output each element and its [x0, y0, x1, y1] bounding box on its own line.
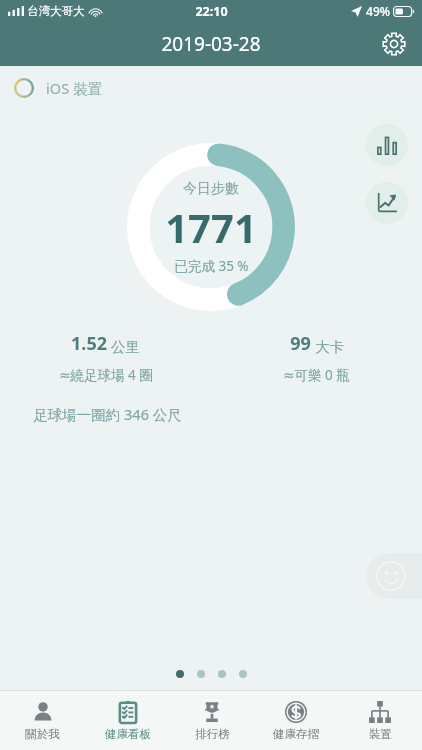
staticText: 已完成 35 %: [174, 257, 249, 275]
staticText: ≈繞足球場 4 圈: [59, 366, 153, 384]
staticText: 關於我: [25, 727, 60, 741]
staticText: 排行榜: [195, 727, 230, 741]
button[interactable]: 關於我: [0, 691, 85, 750]
button[interactable]: Feedback: [366, 553, 422, 599]
button[interactable]: 排行榜: [170, 691, 254, 750]
staticText: 足球場一圈約 346 公尺: [33, 404, 182, 424]
button[interactable]: Statistics chart: [366, 124, 408, 166]
staticText: 台湾大哥大: [27, 4, 85, 18]
staticText: 49%: [366, 3, 390, 19]
staticText: 22:10: [195, 3, 228, 20]
button[interactable]: Settings: [374, 24, 414, 64]
staticText: 健康看板: [105, 727, 151, 741]
staticText: 健康存摺: [273, 727, 319, 741]
staticText: 大卡: [315, 338, 344, 356]
button[interactable]: 健康存摺: [254, 691, 338, 750]
staticText: iOS 裝置: [46, 78, 102, 98]
staticText: 1.52: [71, 331, 107, 356]
button[interactable]: 今日步數: [127, 143, 295, 311]
staticText: 2019-03-28: [161, 31, 261, 57]
staticText: 1771: [165, 200, 257, 254]
staticText: ≈可樂 0 瓶: [283, 366, 350, 384]
staticText: 裝置: [369, 727, 392, 741]
staticText: 99: [290, 331, 311, 356]
staticText: 今日步數: [183, 180, 239, 198]
staticText: 公里: [111, 338, 140, 356]
button[interactable]: 健康看板: [85, 691, 170, 750]
button[interactable]: iOS 裝置: [14, 78, 102, 98]
button[interactable]: 裝置: [338, 691, 422, 750]
button[interactable]: Trend chart: [366, 182, 408, 224]
